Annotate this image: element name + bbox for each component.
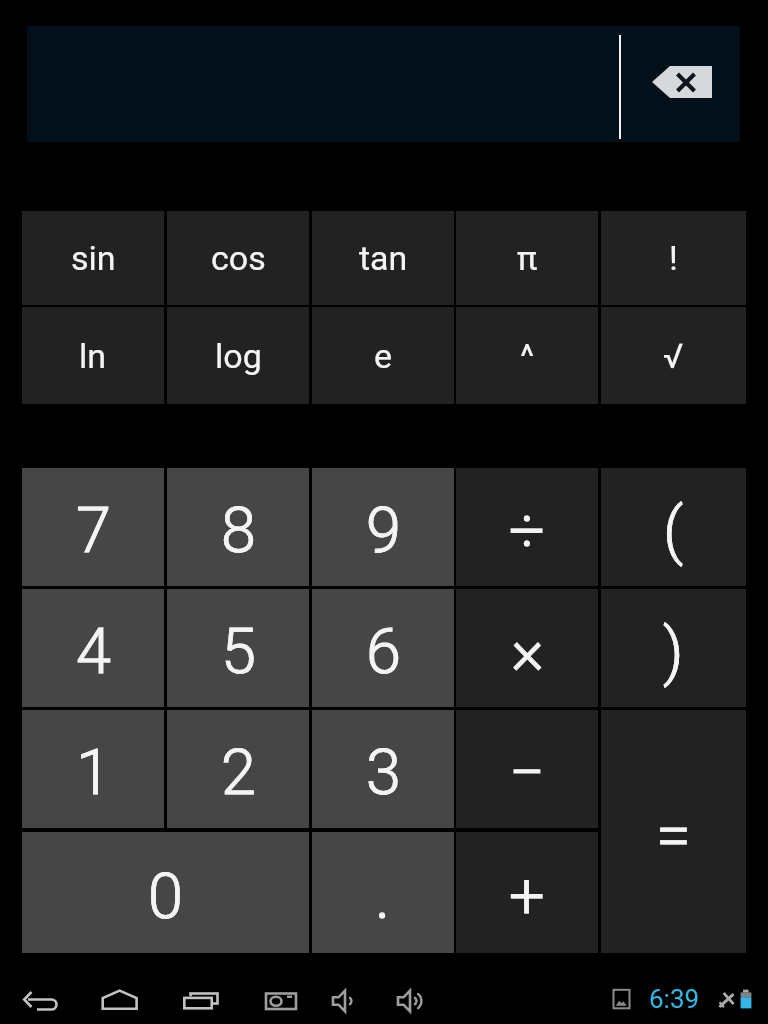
staticText: log [215, 336, 262, 376]
button[interactable]: π [456, 211, 598, 305]
staticText: − [509, 736, 545, 810]
staticText: 1 [76, 736, 111, 810]
staticText: 1 [76, 736, 111, 810]
button[interactable]: ! [601, 211, 746, 305]
button[interactable]: log [167, 307, 309, 404]
button[interactable] [27, 26, 740, 142]
staticText: = [656, 799, 691, 873]
button[interactable]: = [601, 710, 746, 953]
staticText: = [656, 799, 691, 873]
staticText: 0 [148, 860, 183, 934]
staticText: ( [663, 494, 684, 568]
staticText: 9 [366, 494, 401, 568]
button[interactable]: ln [22, 307, 164, 404]
button[interactable]: 3 [312, 710, 454, 828]
staticText: ) [663, 615, 684, 689]
staticText: 8 [221, 494, 256, 568]
staticText: + [509, 860, 545, 934]
staticText: 9 [366, 494, 401, 568]
staticText: ! [669, 238, 678, 278]
staticText: 3 [366, 736, 401, 810]
button[interactable]: 1 [22, 710, 164, 828]
staticText: ) [663, 615, 684, 689]
staticText: 7 [76, 494, 111, 568]
staticText: . [375, 860, 391, 934]
button[interactable]: tan [312, 211, 454, 305]
staticText: 4 [76, 615, 111, 689]
button[interactable]: × [456, 589, 598, 707]
staticText: ÷ [509, 494, 545, 568]
button[interactable]: . [312, 832, 454, 953]
button[interactable]: 4 [22, 589, 164, 707]
staticText: + [509, 860, 545, 934]
button[interactable] [652, 66, 712, 98]
staticText: 8 [221, 494, 256, 568]
staticText: ^ [520, 336, 535, 376]
button[interactable]: ( [601, 468, 746, 586]
staticText: 3 [366, 736, 401, 810]
staticText: tan [359, 238, 408, 278]
button[interactable]: 5 [167, 589, 309, 707]
button[interactable]: ^ [456, 307, 598, 404]
button[interactable]: 2 [167, 710, 309, 828]
staticText: 6:39 [649, 984, 700, 1014]
staticText: 6 [366, 615, 401, 689]
button[interactable]: 0 [22, 832, 309, 953]
button[interactable]: e [312, 307, 454, 404]
staticText: √ [663, 336, 684, 376]
staticText: 7 [76, 494, 111, 568]
staticText: 4 [76, 615, 111, 689]
staticText: π [517, 238, 538, 278]
button[interactable]: 6 [312, 589, 454, 707]
staticText: 6 [366, 615, 401, 689]
staticText: ( [663, 494, 684, 568]
staticText: . [375, 860, 391, 934]
staticText: × [511, 615, 544, 689]
staticText: 2 [221, 736, 256, 810]
staticText: ln [79, 336, 107, 376]
button[interactable]: 8 [167, 468, 309, 586]
staticText: cos [211, 238, 266, 278]
button[interactable]: 7 [22, 468, 164, 586]
button[interactable]: − [456, 710, 598, 828]
button[interactable]: + [456, 832, 598, 953]
staticText: ÷ [509, 494, 545, 568]
button[interactable]: √ [601, 307, 746, 404]
staticText: e [374, 336, 393, 376]
button[interactable]: 9 [312, 468, 454, 586]
staticText: × [511, 615, 544, 689]
staticText: 5 [221, 615, 256, 689]
staticText: sin [71, 238, 116, 278]
staticText: 0 [148, 860, 183, 934]
button[interactable]: ) [601, 589, 746, 707]
button[interactable]: ÷ [456, 468, 598, 586]
button[interactable]: cos [167, 211, 309, 305]
staticText: − [509, 736, 545, 810]
staticText: 5 [221, 615, 256, 689]
staticText: 2 [221, 736, 256, 810]
button[interactable]: sin [22, 211, 164, 305]
